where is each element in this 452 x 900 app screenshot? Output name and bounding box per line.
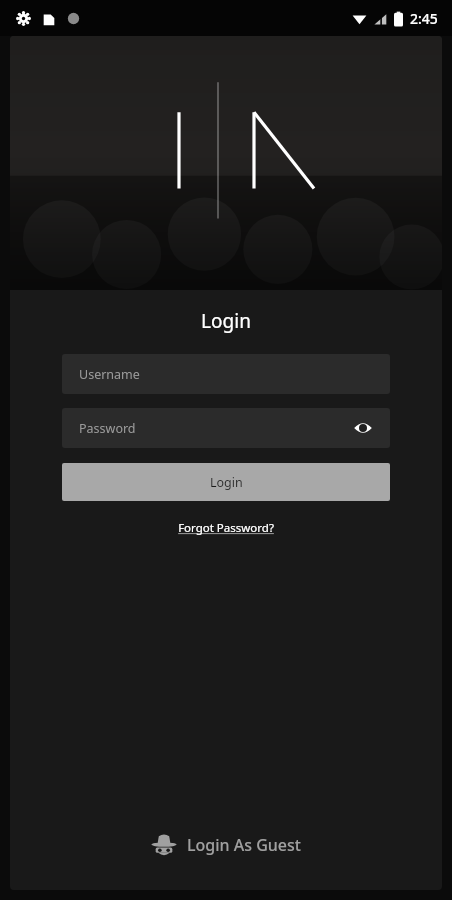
staticText: Login	[10, 308, 442, 334]
staticText: Login	[210, 474, 243, 491]
staticText: Login As Guest	[187, 834, 301, 856]
button[interactable]: Username	[62, 354, 390, 394]
staticText: 2:45	[410, 9, 438, 28]
staticText: Username	[79, 366, 140, 383]
button[interactable]: Password	[62, 408, 390, 448]
button[interactable]: Forgot Password?	[10, 520, 442, 536]
button[interactable]: Show password	[350, 415, 376, 441]
button[interactable]: Login	[62, 463, 390, 501]
staticText: Password	[79, 420, 136, 437]
button[interactable]: Login As Guest	[10, 826, 442, 864]
